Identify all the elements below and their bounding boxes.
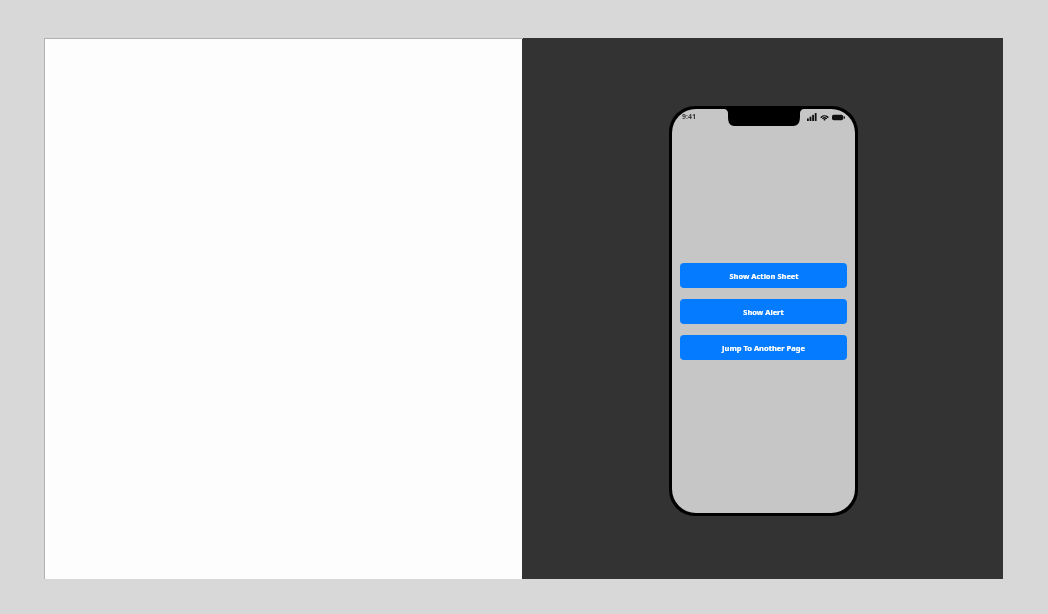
staticText: Show Action Sheet [729, 271, 799, 281]
other: Cellular signal [807, 113, 817, 121]
button[interactable]: Show Alert [680, 299, 847, 324]
staticText: 9:41 [682, 112, 696, 122]
staticText: Show Alert [743, 307, 784, 317]
staticText: Jump To Another Page [722, 343, 805, 353]
other: Battery [832, 114, 845, 121]
other: Wi-Fi [820, 113, 829, 121]
button[interactable]: Show Action Sheet [680, 263, 847, 288]
button[interactable]: Jump To Another Page [680, 335, 847, 360]
